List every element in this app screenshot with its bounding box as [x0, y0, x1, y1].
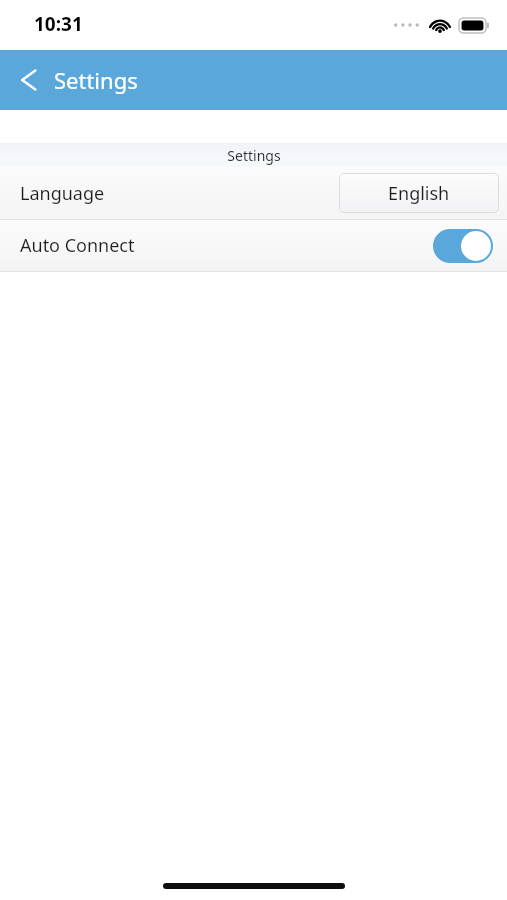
- button[interactable]: Language: [0, 167, 507, 219]
- staticText: 10:31: [34, 11, 83, 37]
- staticText: Settings: [227, 146, 281, 165]
- staticText: Settings: [54, 65, 138, 95]
- staticText: Language: [20, 181, 105, 206]
- button[interactable]: Back: [8, 59, 50, 101]
- button[interactable]: English: [339, 173, 499, 213]
- button[interactable]: Auto Connect: [0, 220, 507, 271]
- staticText: Auto Connect: [20, 233, 135, 258]
- button[interactable]: Auto Connect toggle, on: [433, 229, 493, 263]
- staticText: English: [388, 181, 450, 206]
